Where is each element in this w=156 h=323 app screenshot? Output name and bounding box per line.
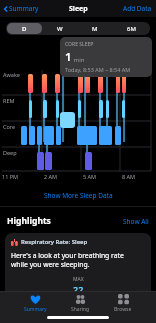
staticText: Awake [3,71,20,78]
staticText: Today, 8:53 AM – 8:54 AM [65,66,131,73]
staticText: 11 PM [2,173,19,180]
staticText: MAX [73,276,84,283]
staticText: D [22,25,27,33]
button[interactable]: Summary [24,294,47,313]
staticText: 6M [127,25,136,33]
staticText: Core [3,123,16,130]
staticText: CORE SLEEP [65,41,94,48]
staticText: 22 [73,283,84,295]
staticText: Add Data [123,4,152,13]
staticText: Summary [9,4,39,13]
staticText: Respiratory Rate: Sleep [21,238,88,246]
staticText: W [57,25,63,33]
button[interactable]: D [7,23,42,34]
staticText: Show All [123,217,149,226]
button[interactable]: Show All [123,217,149,226]
staticText: Sleep [69,4,88,14]
staticText: 8 AM [122,173,136,180]
button[interactable]: Show More Sleep Data [0,184,156,206]
staticText: 2 AM [44,173,58,180]
button[interactable]: W [42,23,77,34]
button[interactable]: Respiratory Rate: Sleep [5,233,151,320]
staticText: Here's a look at your breathing rate whi… [11,251,124,269]
staticText: Deep [3,149,17,156]
button[interactable]: Summary [3,4,39,13]
staticText: 1 [65,49,72,65]
button[interactable]: Sharing [71,294,90,313]
staticText: REM [3,97,15,104]
staticText: Show More Sleep Data [44,191,113,200]
staticText: Highlights [7,215,51,227]
button[interactable]: 6M [113,23,149,34]
button[interactable]: Browse [114,294,132,313]
button[interactable]: Add Data [123,4,152,13]
staticText: Summary [24,306,47,313]
staticText: Browse [114,306,132,313]
staticText: Sharing [71,306,90,313]
staticText: 5 AM [83,173,97,180]
button[interactable]: M [77,23,113,34]
staticText: M [92,25,98,33]
staticText: min [72,56,85,64]
